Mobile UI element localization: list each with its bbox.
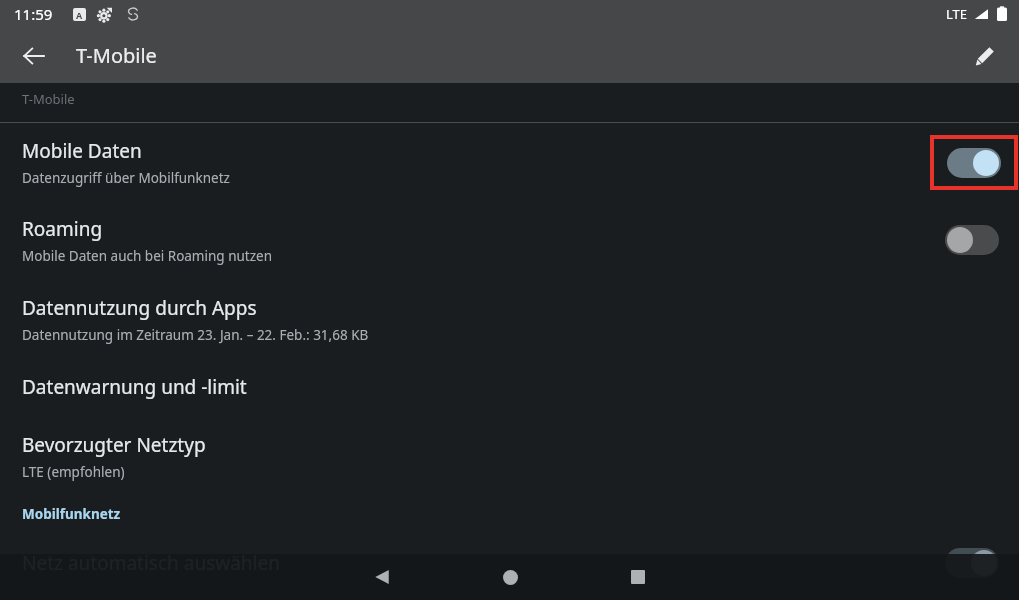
staticText: Mobilfunknetz (22, 505, 121, 523)
button[interactable]: Recent apps (610, 554, 666, 600)
other: Mobile Daten Switch (947, 148, 1001, 178)
other: Netz automatisch auswählen Switch (945, 548, 999, 578)
staticText: LTE (946, 5, 968, 23)
staticText: Mobile Daten auch bei Roaming nutzen (22, 247, 272, 265)
button[interactable]: Edit (963, 34, 1007, 78)
staticText: T-Mobile (22, 90, 75, 108)
staticText: T-Mobile (76, 42, 157, 69)
staticText: Datenwarnung und -limit (22, 374, 247, 400)
button[interactable]: Netz automatisch auswählen (0, 533, 1019, 593)
button[interactable]: Datennutzung durch Apps (0, 279, 1019, 357)
button[interactable]: Back (354, 554, 410, 600)
staticText: Bevorzugter Netztyp (22, 432, 206, 458)
staticText: Datennutzung durch Apps (22, 295, 257, 321)
button[interactable]: Mobile Daten (0, 123, 1019, 201)
other: Roaming Switch (945, 225, 999, 255)
button[interactable]: Datenwarnung und -limit (0, 357, 1019, 417)
button[interactable]: Bevorzugter Netztyp (0, 417, 1019, 495)
staticText: Datenzugriff über Mobilfunknetz (22, 169, 230, 187)
staticText: Netz automatisch auswählen (22, 550, 280, 576)
staticText: Roaming (22, 216, 103, 242)
button[interactable]: Home (482, 554, 538, 600)
button[interactable]: Roaming (0, 201, 1019, 279)
staticText: Datennutzung im Zeitraum 23. Jan. – 22. … (22, 326, 369, 344)
staticText: LTE (empfohlen) (22, 463, 125, 481)
staticText: Mobile Daten (22, 138, 142, 164)
staticText: 11:59 (14, 4, 53, 24)
staticText: A (76, 9, 83, 21)
button[interactable]: Back (12, 34, 56, 78)
